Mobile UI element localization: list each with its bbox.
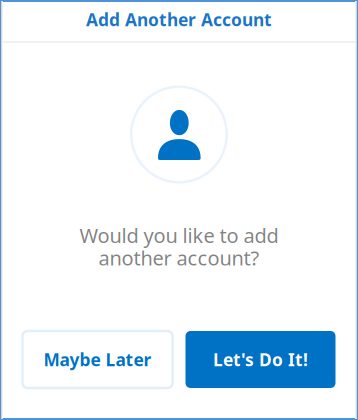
staticText: Let's Do It!	[213, 348, 308, 371]
staticText: Add Another Account	[86, 8, 272, 31]
button[interactable]: Let's Do It!	[185, 331, 335, 388]
button[interactable]: Add Another Account	[2, 2, 356, 37]
button[interactable]: Maybe Later	[22, 331, 172, 388]
staticText: Would you like to add	[79, 222, 278, 249]
staticText: another account?	[98, 245, 259, 271]
staticText: Maybe Later	[43, 348, 151, 371]
